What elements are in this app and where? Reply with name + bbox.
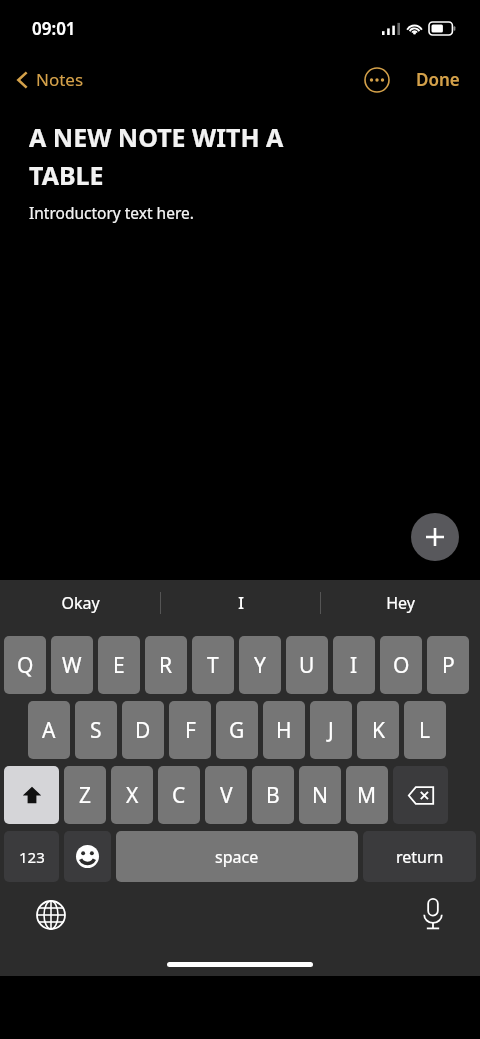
- staticText: Done: [416, 68, 460, 91]
- button[interactable]: Backspace: [393, 766, 448, 824]
- button[interactable]: J: [310, 701, 352, 759]
- staticText: M: [357, 781, 377, 810]
- staticText: Introductory text here.: [29, 202, 194, 223]
- button[interactable]: U: [286, 636, 328, 694]
- staticText: Q: [17, 651, 34, 680]
- button[interactable]: Change keyboard language: [36, 900, 66, 930]
- staticText: 123: [19, 847, 45, 867]
- staticText: V: [220, 781, 233, 810]
- button[interactable]: V: [205, 766, 247, 824]
- button[interactable]: Hey: [321, 580, 480, 626]
- staticText: W: [62, 651, 82, 680]
- button[interactable]: return: [363, 831, 476, 882]
- staticText: A: [42, 716, 56, 745]
- staticText: Okay: [61, 592, 100, 614]
- staticText: Z: [79, 781, 92, 810]
- staticText: L: [419, 716, 431, 745]
- staticText: U: [299, 651, 315, 680]
- staticText: T: [207, 651, 219, 680]
- button[interactable]: 123: [4, 831, 59, 882]
- button[interactable]: G: [216, 701, 258, 759]
- button[interactable]: S: [75, 701, 117, 759]
- staticText: return: [396, 846, 444, 868]
- button[interactable]: Y: [239, 636, 281, 694]
- staticText: B: [266, 781, 280, 810]
- button[interactable]: Okay: [0, 580, 160, 626]
- button[interactable]: X: [111, 766, 153, 824]
- button[interactable]: I: [333, 636, 375, 694]
- button[interactable]: L: [404, 701, 446, 759]
- button[interactable]: I: [161, 580, 320, 626]
- staticText: H: [276, 716, 292, 745]
- button[interactable]: O: [380, 636, 422, 694]
- button[interactable]: E: [98, 636, 140, 694]
- staticText: 09:01: [32, 17, 76, 40]
- button[interactable]: T: [192, 636, 234, 694]
- button[interactable]: N: [299, 766, 341, 824]
- staticText: N: [312, 781, 328, 810]
- staticText: Notes: [36, 68, 84, 91]
- staticText: P: [442, 651, 455, 680]
- button[interactable]: space: [116, 831, 358, 882]
- staticText: A NEW NOTE WITH A: [29, 120, 284, 154]
- staticText: Hey: [386, 592, 415, 614]
- button[interactable]: C: [158, 766, 200, 824]
- button[interactable]: P: [427, 636, 469, 694]
- button[interactable]: Z: [64, 766, 106, 824]
- button[interactable]: A: [28, 701, 70, 759]
- button[interactable]: W: [51, 636, 93, 694]
- staticText: space: [215, 846, 259, 868]
- staticText: R: [159, 651, 173, 680]
- button[interactable]: Add attachment: [411, 513, 459, 561]
- button[interactable]: F: [169, 701, 211, 759]
- staticText: E: [113, 651, 125, 680]
- button[interactable]: Dictate: [422, 898, 444, 930]
- button[interactable]: H: [263, 701, 305, 759]
- staticText: O: [393, 651, 410, 680]
- button[interactable]: Done: [412, 64, 464, 95]
- button[interactable]: Emoji: [64, 831, 111, 882]
- button[interactable]: Q: [4, 636, 46, 694]
- staticText: G: [229, 716, 245, 745]
- staticText: I: [238, 592, 244, 614]
- staticText: F: [185, 716, 196, 745]
- staticText: TABLE: [29, 158, 104, 192]
- staticText: K: [372, 716, 385, 745]
- button[interactable]: K: [357, 701, 399, 759]
- button[interactable]: Shift: [4, 766, 59, 824]
- button[interactable]: Notes: [12, 64, 88, 95]
- staticText: J: [328, 716, 334, 745]
- staticText: S: [90, 716, 102, 745]
- button[interactable]: B: [252, 766, 294, 824]
- button[interactable]: M: [346, 766, 388, 824]
- button[interactable]: D: [122, 701, 164, 759]
- staticText: X: [126, 781, 139, 810]
- staticText: I: [350, 651, 358, 680]
- button[interactable]: R: [145, 636, 187, 694]
- button[interactable]: More options: [364, 67, 390, 93]
- staticText: Y: [254, 651, 266, 680]
- staticText: D: [135, 716, 151, 745]
- staticText: C: [172, 781, 186, 810]
